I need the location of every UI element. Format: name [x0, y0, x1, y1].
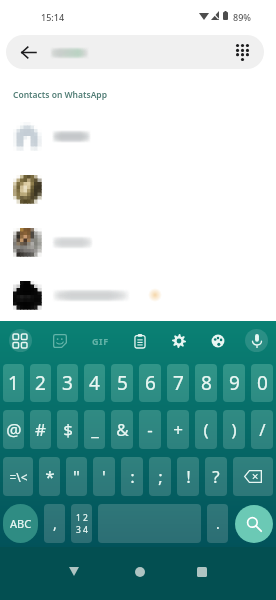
button[interactable]: / [251, 410, 273, 449]
button[interactable]: ) [223, 410, 245, 449]
staticText: @ [6, 418, 22, 441]
staticText: 2 [35, 370, 46, 396]
staticText: / [259, 418, 266, 441]
button[interactable]: 1 [3, 364, 24, 402]
staticText: 3 [62, 370, 73, 396]
button[interactable]: ' [93, 457, 115, 496]
button[interactable]: ? [205, 457, 227, 496]
button[interactable]: 2 [30, 364, 51, 402]
staticText: 89% [233, 11, 251, 23]
staticText: 5 [117, 370, 128, 396]
button[interactable]: @ [3, 410, 24, 449]
button[interactable]: Back [57, 555, 90, 588]
button[interactable]: 0 [251, 364, 273, 402]
staticText: 15:14 [41, 11, 65, 23]
button[interactable]: _ [84, 410, 105, 449]
staticText: - [147, 418, 153, 441]
button[interactable]: Clipboard [120, 321, 159, 360]
button[interactable]: Recents [185, 555, 218, 588]
button[interactable]: . [207, 504, 228, 543]
button[interactable]: 9 [223, 364, 245, 402]
staticText: 1 2 [76, 512, 88, 524]
button[interactable]: ABC [3, 504, 38, 543]
button[interactable] [0, 215, 276, 268]
staticText: : [130, 465, 135, 488]
staticText: ! [186, 465, 191, 488]
staticText: ; [158, 465, 163, 488]
staticText: 6 [145, 370, 156, 396]
staticText: 7 [173, 370, 184, 396]
button[interactable]: : [121, 457, 143, 496]
button[interactable]: " [66, 457, 87, 496]
staticText: ? [212, 465, 220, 488]
button[interactable]: + [167, 410, 189, 449]
button[interactable]: 3 [57, 364, 78, 402]
button[interactable]: =\< [3, 457, 33, 496]
button[interactable]: $ [57, 410, 78, 449]
button[interactable]: 8 [195, 364, 217, 402]
button[interactable]: Back [6, 35, 50, 69]
staticText: " [73, 465, 80, 488]
button[interactable]: Voice input [237, 321, 276, 360]
staticText: ' [102, 465, 106, 488]
button[interactable]: Stickers [40, 321, 80, 360]
button[interactable]: - [139, 410, 161, 449]
staticText: ( [203, 418, 209, 441]
staticText: 1 [8, 370, 19, 396]
staticText: & [116, 418, 129, 441]
staticText: 4 [89, 370, 100, 396]
staticText: =\< [9, 469, 28, 485]
button[interactable]: , [44, 504, 65, 543]
button[interactable]: GIF [80, 321, 120, 360]
button[interactable] [233, 457, 273, 496]
button[interactable]: 5 [111, 364, 133, 402]
staticText: 9 [229, 370, 240, 396]
button[interactable] [0, 268, 276, 321]
button[interactable]: # [30, 410, 51, 449]
button[interactable]: Apps [0, 321, 40, 360]
staticText: 8 [201, 370, 212, 396]
button[interactable] [0, 162, 276, 215]
staticText: Contacts on WhatsApp [13, 89, 108, 101]
staticText: _ [91, 418, 99, 441]
button[interactable]: * [39, 457, 60, 496]
button[interactable]: Settings [159, 321, 198, 360]
staticText: # [35, 418, 46, 441]
button[interactable] [0, 109, 276, 162]
button[interactable]: 7 [167, 364, 189, 402]
staticText: $ [63, 418, 73, 441]
button[interactable]: ( [195, 410, 217, 449]
staticText: . [216, 514, 220, 533]
button[interactable]: 6 [139, 364, 161, 402]
button[interactable]: ! [177, 457, 199, 496]
staticText: 0 [257, 370, 268, 396]
button[interactable]: Dial pad [220, 35, 264, 69]
staticText: + [173, 418, 183, 441]
staticText: * [45, 465, 55, 488]
staticText: 3 4 [76, 524, 88, 536]
button[interactable]: Home [123, 555, 156, 588]
button[interactable]: 1 2 [71, 504, 92, 543]
staticText: , [53, 514, 57, 533]
staticText: ABC [10, 516, 32, 531]
button[interactable]: Search [235, 505, 273, 543]
button[interactable]: 4 [84, 364, 105, 402]
button[interactable]: & [111, 410, 133, 449]
staticText: ) [231, 418, 237, 441]
staticText: GIF [92, 335, 109, 347]
button[interactable]: ; [149, 457, 171, 496]
button[interactable]: Themes [198, 321, 237, 360]
